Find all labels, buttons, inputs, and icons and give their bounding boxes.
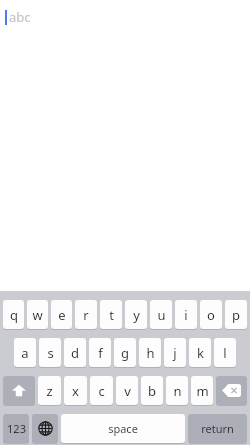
- button[interactable]: Shift: [3, 376, 35, 407]
- staticText: abc: [9, 8, 31, 26]
- button[interactable]: r: [75, 300, 97, 331]
- staticText: g: [121, 344, 129, 362]
- staticText: space: [108, 421, 138, 436]
- staticText: b: [148, 382, 156, 400]
- button[interactable]: b: [141, 376, 163, 407]
- button[interactable]: f: [89, 338, 111, 369]
- staticText: q: [10, 306, 18, 324]
- button[interactable]: space: [61, 414, 185, 445]
- button[interactable]: g: [114, 338, 136, 369]
- staticText: u: [157, 306, 166, 324]
- button[interactable]: m: [191, 376, 213, 407]
- staticText: c: [98, 382, 105, 400]
- button[interactable]: n: [166, 376, 188, 407]
- button[interactable]: y: [125, 300, 147, 331]
- staticText: l: [223, 344, 227, 362]
- staticText: t: [109, 306, 114, 324]
- staticText: w: [32, 306, 43, 324]
- button[interactable]: i: [175, 300, 197, 331]
- staticText: f: [98, 344, 103, 362]
- button[interactable]: w: [27, 300, 48, 331]
- button[interactable]: q: [3, 300, 24, 331]
- staticText: r: [83, 306, 89, 324]
- button[interactable]: k: [189, 338, 211, 369]
- button[interactable]: u: [150, 300, 172, 331]
- button[interactable]: e: [51, 300, 72, 331]
- button[interactable]: Backspace: [216, 376, 247, 407]
- staticText: k: [197, 344, 204, 362]
- staticText: i: [184, 306, 188, 324]
- button[interactable]: d: [64, 338, 86, 369]
- button[interactable]: l: [214, 338, 236, 369]
- staticText: e: [58, 306, 66, 324]
- button[interactable]: x: [64, 376, 87, 407]
- button[interactable]: j: [164, 338, 186, 369]
- staticText: x: [72, 382, 79, 400]
- button[interactable]: abc: [5, 8, 250, 26]
- button[interactable]: return: [188, 414, 247, 445]
- staticText: m: [196, 382, 209, 400]
- staticText: v: [124, 382, 131, 400]
- button[interactable]: o: [200, 300, 222, 331]
- staticText: s: [47, 344, 54, 362]
- button[interactable]: 123: [3, 414, 29, 445]
- staticText: p: [232, 306, 240, 324]
- button[interactable]: h: [139, 338, 161, 369]
- staticText: n: [173, 382, 182, 400]
- button[interactable]: p: [225, 300, 247, 331]
- staticText: z: [46, 382, 53, 400]
- button[interactable]: t: [100, 300, 122, 331]
- staticText: 123: [7, 421, 26, 436]
- button[interactable]: z: [38, 376, 61, 407]
- staticText: y: [133, 306, 140, 324]
- staticText: o: [207, 306, 215, 324]
- staticText: d: [71, 344, 79, 362]
- button[interactable]: Change keyboard language: [32, 414, 58, 445]
- button[interactable]: s: [39, 338, 61, 369]
- button[interactable]: c: [90, 376, 113, 407]
- button[interactable]: a: [14, 338, 36, 369]
- button[interactable]: v: [116, 376, 138, 407]
- staticText: j: [173, 344, 177, 362]
- staticText: return: [201, 421, 234, 436]
- staticText: a: [21, 344, 29, 362]
- staticText: h: [146, 344, 155, 362]
